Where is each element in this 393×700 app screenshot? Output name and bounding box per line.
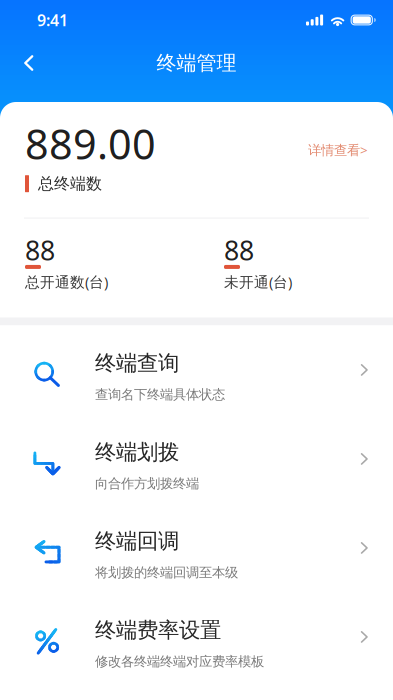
staticText: 终端查询 xyxy=(95,350,179,376)
staticText: 终端划拨 xyxy=(95,439,179,465)
staticText: 88 xyxy=(224,232,254,268)
staticText: 修改各终端终端对应费率模板 xyxy=(95,653,264,670)
staticText: 详情查看> xyxy=(308,141,368,159)
staticText: 终端费率设置 xyxy=(95,617,221,643)
button[interactable]: 终端回调 xyxy=(0,503,393,592)
staticText: 9:41 xyxy=(37,9,68,31)
staticText: 总开通数(台) xyxy=(25,272,108,291)
staticText: 总终端数 xyxy=(38,174,102,194)
button[interactable]: 终端费率设置 xyxy=(0,592,393,681)
button[interactable]: 终端查询 xyxy=(0,325,393,414)
staticText: 将划拨的终端回调至本级 xyxy=(95,564,238,581)
staticText: 向合作方划拨终端 xyxy=(95,475,199,492)
staticText: 88 xyxy=(25,232,55,268)
staticText: 889.00 xyxy=(25,116,156,171)
staticText: 终端回调 xyxy=(95,528,179,554)
staticText: 未开通(台) xyxy=(224,272,292,291)
staticText: 查询名下终端具体状态 xyxy=(95,386,225,403)
button[interactable]: 详情查看> xyxy=(308,116,368,159)
button[interactable]: 终端划拨 xyxy=(0,414,393,503)
staticText: 终端管理 xyxy=(156,51,236,75)
button[interactable]: Back xyxy=(0,42,49,84)
